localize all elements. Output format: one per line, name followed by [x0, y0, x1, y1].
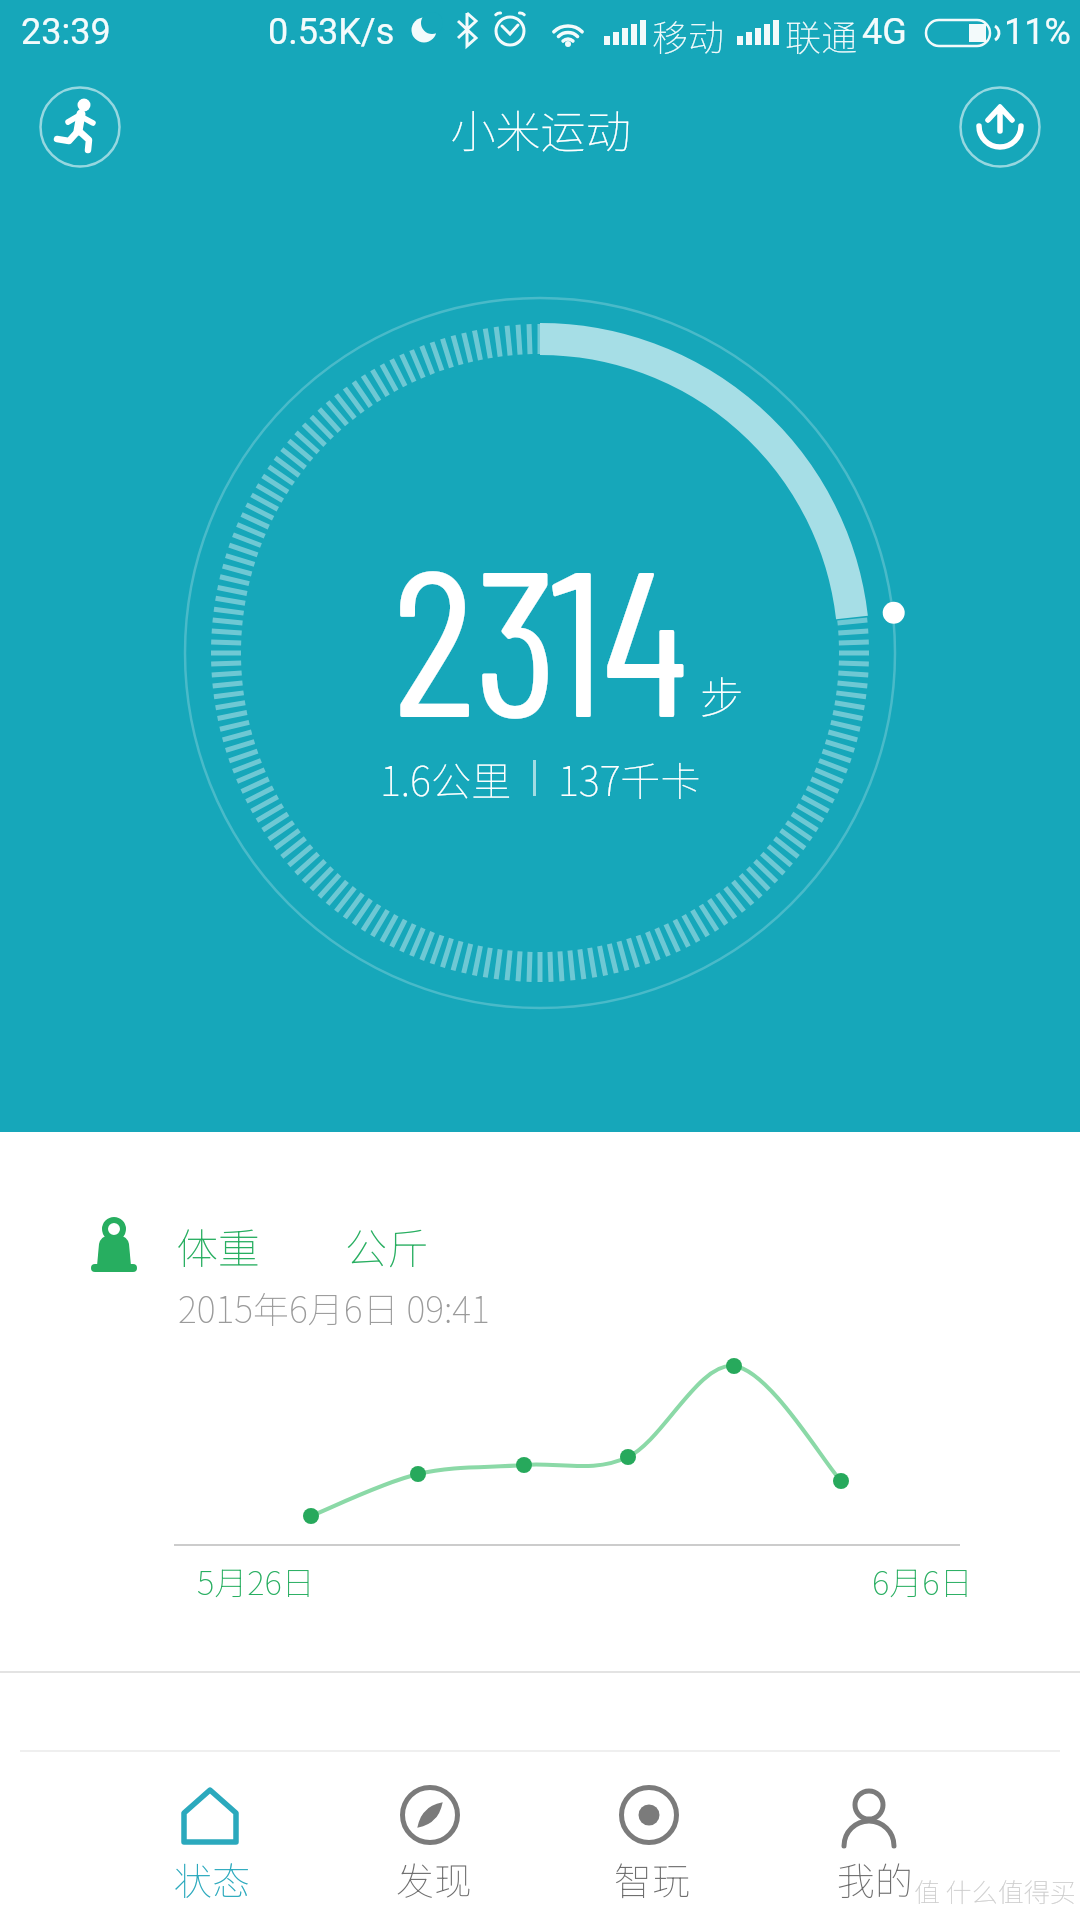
staticText: 移动 — [652, 9, 725, 61]
staticText: 智玩 — [614, 1851, 691, 1906]
staticText: 4G — [862, 11, 907, 53]
staticText: 公斤 — [345, 1215, 430, 1276]
staticText: 11% — [1004, 11, 1071, 53]
button[interactable] — [760, 1760, 980, 1920]
staticText: 状态 — [174, 1851, 251, 1906]
staticText: 我的 — [837, 1851, 914, 1906]
staticText: 步 — [700, 663, 744, 727]
button[interactable] — [540, 1760, 760, 1920]
staticText: 值 什么值得买 — [914, 1872, 1076, 1910]
staticText: 2314 — [392, 512, 688, 758]
button[interactable] — [322, 1760, 540, 1920]
staticText: 小米运动 — [450, 96, 631, 161]
staticText: 23:39 — [21, 11, 111, 53]
staticText: 联通 — [785, 9, 858, 61]
staticText: 体重 — [176, 1215, 261, 1276]
staticText: 2015年6月6日 09:41 — [178, 1281, 490, 1333]
staticText: 5月26日 — [197, 1557, 315, 1605]
staticText: 0.53K/s — [268, 11, 395, 53]
staticText: 1.6公里 — [380, 750, 511, 806]
staticText: 发现 — [396, 1851, 473, 1906]
button[interactable] — [960, 87, 1040, 167]
button[interactable] — [60, 1190, 1020, 1610]
button[interactable] — [100, 1760, 320, 1920]
staticText: 137千卡 — [558, 750, 701, 806]
button[interactable] — [40, 87, 120, 167]
staticText: 6月6日 — [872, 1557, 973, 1605]
